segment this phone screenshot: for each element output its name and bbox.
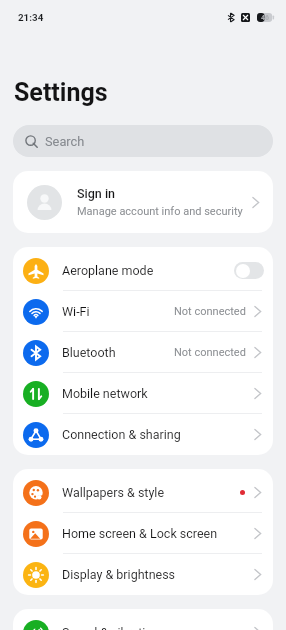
- staticText: Aeroplane mode: [62, 263, 154, 278]
- staticText: Search: [45, 134, 85, 149]
- button[interactable]: Wallpapers & style: [13, 472, 273, 513]
- staticText: Manage account info and security: [77, 205, 243, 218]
- button[interactable]: Mobile network: [13, 373, 273, 414]
- staticText: 46: [261, 14, 270, 22]
- staticText: Wallpapers & style: [62, 485, 165, 500]
- button[interactable]: Display & brightness: [13, 554, 273, 595]
- staticText: Home screen & Lock screen: [62, 526, 218, 541]
- button[interactable]: Aeroplane mode: [13, 250, 273, 291]
- staticText: Wi-Fi: [62, 304, 90, 319]
- staticText: Connection & sharing: [62, 427, 181, 442]
- staticText: Not connected: [174, 305, 246, 318]
- staticText: Mobile network: [62, 386, 148, 401]
- staticText: Display & brightness: [62, 567, 176, 582]
- button[interactable]: Aeroplane mode toggle: [234, 262, 264, 279]
- button[interactable]: Sound & vibration: [13, 612, 273, 630]
- staticText: Settings: [14, 78, 108, 107]
- staticText: Not connected: [174, 346, 246, 359]
- button[interactable]: Sign in: [13, 171, 273, 233]
- button[interactable]: Search: [13, 125, 273, 157]
- button[interactable]: Home screen & Lock screen: [13, 513, 273, 554]
- button[interactable]: Bluetooth: [13, 332, 273, 373]
- button[interactable]: Connection & sharing: [13, 414, 273, 455]
- staticText: Bluetooth: [62, 345, 116, 360]
- button[interactable]: Wi-Fi: [13, 291, 273, 332]
- staticText: Sign in: [77, 186, 116, 201]
- staticText: Sound & vibration: [62, 625, 160, 630]
- staticText: 21:34: [18, 12, 44, 23]
